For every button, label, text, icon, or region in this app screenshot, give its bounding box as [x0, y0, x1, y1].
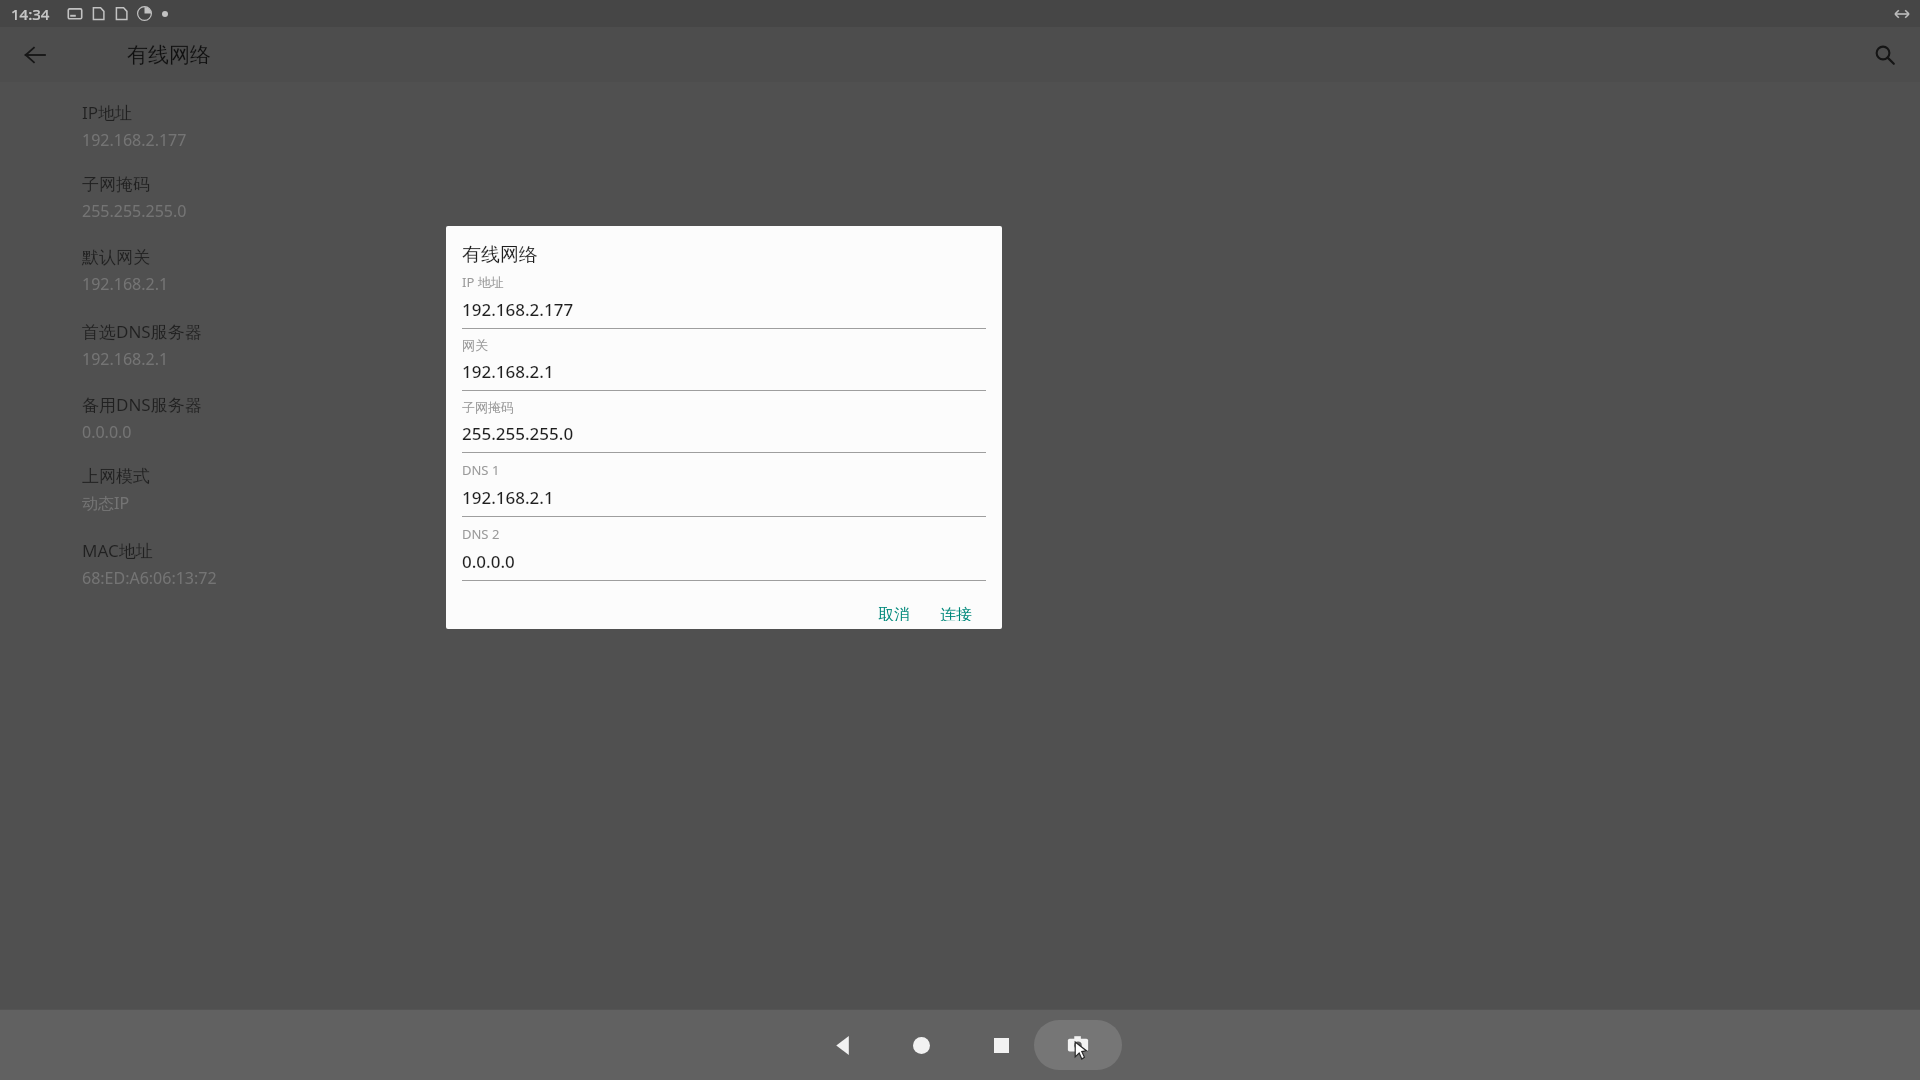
staticText: 备用DNS服务器	[82, 393, 202, 416]
staticText: DNS 2	[462, 525, 500, 543]
staticText: 有线网络	[127, 42, 211, 68]
staticText: 动态IP	[82, 492, 130, 514]
staticText: 192.168.2.1	[462, 486, 554, 509]
button[interactable]: 备用DNS服务器	[82, 393, 1920, 466]
staticText: 连接	[940, 605, 972, 621]
other: Resize	[1894, 9, 1910, 19]
staticText: 0.0.0.0	[82, 421, 132, 443]
staticText: 取消	[878, 605, 910, 621]
staticText: IP 地址	[462, 273, 504, 291]
button[interactable]: Recents	[973, 1017, 1029, 1073]
staticText: 192.168.2.177	[82, 129, 187, 151]
button[interactable]: 上网模式	[82, 466, 1920, 539]
staticText: 192.168.2.177	[462, 298, 574, 321]
button[interactable]: 子网掩码	[462, 399, 986, 453]
staticText: MAC地址	[82, 539, 153, 562]
staticText: 192.168.2.1	[82, 348, 169, 370]
button[interactable]: 取消	[868, 597, 920, 629]
button[interactable]: 连接	[930, 597, 982, 629]
button[interactable]: 网关	[462, 337, 986, 391]
button[interactable]: 默认网关	[82, 247, 1920, 320]
button[interactable]: DNS 1	[462, 461, 986, 517]
button[interactable]: 子网掩码	[82, 174, 1920, 247]
staticText: 默认网关	[82, 247, 150, 268]
staticText: 192.168.2.1	[82, 273, 169, 295]
staticText: 有线网络	[462, 243, 538, 267]
button[interactable]: Home	[893, 1017, 949, 1073]
button[interactable]: Screenshot	[1034, 1020, 1122, 1070]
button[interactable]: Back	[815, 1017, 871, 1073]
staticText: 子网掩码	[82, 174, 150, 195]
staticText: 14:34	[11, 4, 50, 24]
staticText: 255.255.255.0	[82, 200, 187, 222]
button[interactable]: Search	[1864, 34, 1906, 76]
button[interactable]: IP 地址	[462, 273, 986, 329]
button[interactable]: DNS 2	[462, 525, 986, 581]
staticText: IP地址	[82, 101, 133, 124]
button[interactable]: 首选DNS服务器	[82, 320, 1920, 393]
staticText: 子网掩码	[462, 399, 514, 415]
staticText: 首选DNS服务器	[82, 320, 202, 343]
staticText: 255.255.255.0	[462, 422, 574, 445]
staticText: DNS 1	[462, 461, 500, 479]
staticText: 网关	[462, 337, 488, 353]
staticText: 68:ED:A6:06:13:72	[82, 567, 217, 589]
staticText: 192.168.2.1	[462, 360, 554, 383]
button[interactable]: Back	[14, 34, 56, 76]
button[interactable]: MAC地址	[82, 539, 1920, 612]
staticText: 上网模式	[82, 466, 150, 487]
staticText: 0.0.0.0	[462, 550, 515, 573]
